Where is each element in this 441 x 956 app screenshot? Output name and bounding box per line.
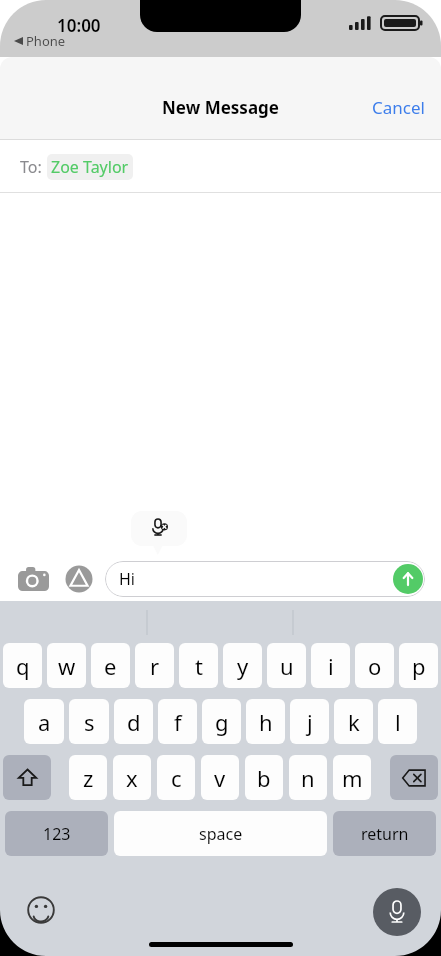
button[interactable]: b — [245, 755, 283, 800]
button[interactable]: a — [24, 699, 64, 744]
staticText: z — [83, 763, 94, 793]
staticText: y — [237, 651, 249, 681]
staticText: Phone — [26, 32, 66, 50]
staticText: s — [84, 707, 95, 737]
button[interactable]: i — [311, 643, 350, 688]
staticText: space — [199, 823, 243, 845]
button[interactable]: r — [135, 643, 174, 688]
button[interactable]: v — [201, 755, 239, 800]
staticText: u — [280, 651, 294, 681]
button[interactable]: j — [290, 699, 329, 744]
button[interactable]: Hi — [105, 561, 425, 597]
staticText: f — [174, 707, 182, 737]
staticText: c — [171, 763, 182, 793]
staticText: Hi — [119, 568, 135, 590]
button[interactable]: e — [91, 643, 130, 688]
button[interactable]: Shift — [3, 755, 51, 800]
button[interactable]: f — [158, 699, 197, 744]
button[interactable]: 123 — [5, 811, 108, 856]
button[interactable]: x — [113, 755, 151, 800]
staticText: e — [104, 651, 117, 681]
staticText: m — [342, 763, 363, 793]
staticText: 123 — [43, 823, 71, 845]
button[interactable]: Send — [393, 564, 423, 594]
button[interactable]: d — [114, 699, 153, 744]
button[interactable]: App Store — [62, 562, 96, 596]
staticText: t — [195, 651, 203, 681]
staticText: 10:00 — [57, 14, 101, 37]
staticText: w — [58, 651, 76, 681]
staticText: a — [38, 707, 51, 737]
staticText: New Message — [162, 96, 279, 119]
staticText: o — [368, 651, 382, 681]
staticText: x — [126, 763, 138, 793]
staticText: i — [328, 651, 334, 681]
button[interactable]: Emoji — [24, 893, 58, 927]
button[interactable]: w — [47, 643, 86, 688]
staticText: k — [348, 707, 360, 737]
button[interactable]: space — [114, 811, 327, 856]
button[interactable]: u — [267, 643, 306, 688]
button[interactable]: Backspace — [390, 755, 438, 800]
button[interactable]: return — [333, 811, 436, 856]
button[interactable]: Camera — [16, 562, 50, 596]
staticText: v — [214, 763, 226, 793]
staticText: d — [127, 707, 141, 737]
button[interactable]: g — [202, 699, 241, 744]
button[interactable]: Cancel — [356, 88, 441, 127]
button[interactable]: y — [223, 643, 262, 688]
button[interactable]: q — [3, 643, 42, 688]
staticText: g — [215, 707, 229, 737]
button[interactable]: n — [289, 755, 327, 800]
staticText: l — [395, 707, 401, 737]
staticText: j — [307, 707, 313, 737]
button[interactable]: Dictation — [373, 888, 421, 936]
staticText: r — [150, 651, 160, 681]
button[interactable]: s — [69, 699, 109, 744]
button[interactable]: z — [69, 755, 107, 800]
button[interactable]: l — [378, 699, 417, 744]
staticText: Zoe Taylor — [51, 156, 129, 178]
staticText: p — [412, 651, 426, 681]
button[interactable]: To: — [0, 140, 441, 193]
staticText: h — [259, 707, 273, 737]
staticText: Cancel — [372, 96, 425, 119]
button[interactable]: p — [399, 643, 438, 688]
button[interactable]: k — [334, 699, 373, 744]
staticText: q — [16, 651, 30, 681]
button[interactable]: t — [179, 643, 218, 688]
button[interactable]: m — [333, 755, 371, 800]
button[interactable]: o — [355, 643, 394, 688]
button[interactable]: c — [157, 755, 195, 800]
staticText: b — [257, 763, 271, 793]
staticText: To: — [20, 156, 42, 178]
staticText: return — [361, 823, 409, 845]
button[interactable]: h — [246, 699, 285, 744]
staticText: n — [301, 763, 315, 793]
